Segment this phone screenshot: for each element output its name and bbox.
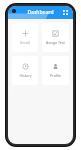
button[interactable]: More options — [61, 8, 70, 17]
staticText: Assign Test — [46, 40, 65, 45]
button[interactable]: Enroll — [12, 23, 38, 52]
staticText: Profile — [50, 73, 61, 78]
staticText: History — [19, 73, 32, 78]
button[interactable]: Assign Test — [42, 23, 69, 52]
staticText: Enroll — [20, 40, 30, 45]
button[interactable]: Profile — [42, 56, 69, 85]
button[interactable]: History — [12, 56, 38, 85]
staticText: Dashboard — [27, 9, 54, 16]
